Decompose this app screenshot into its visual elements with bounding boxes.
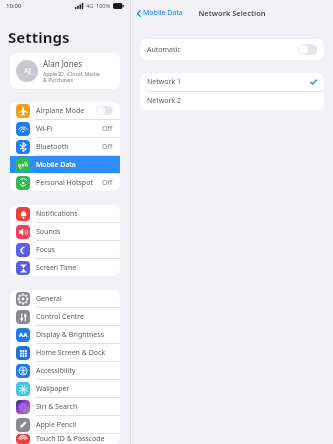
staticText: Touch ID & Passcode [36,434,105,444]
button[interactable]: General [10,290,120,307]
button[interactable]: Mobile Data [10,156,120,173]
staticText: Notifications [36,209,78,219]
staticText: Wallpaper [36,384,70,394]
button[interactable]: AA [10,326,120,343]
staticText: Bluetooth [36,142,69,152]
button[interactable]: Automatic network selection toggle, off [298,44,317,55]
button[interactable]: Airplane Mode toggle, off [96,106,113,115]
button[interactable]: Control Centre [10,308,120,325]
staticText: AA [19,331,28,339]
staticText: Siri & Search [36,402,78,412]
button[interactable]: Network 1 [140,73,324,91]
staticText: Apple Pencil [36,420,77,430]
staticText: Off [102,178,113,188]
staticText: Alan Jones [43,58,82,69]
staticText: Network 2 [147,96,181,106]
button[interactable]: AJ [10,53,120,89]
staticText: Sounds [36,227,61,237]
staticText: Airplane Mode [36,106,85,116]
staticText: Accessibility [36,366,76,376]
staticText: Focus [36,245,55,255]
button[interactable]: Home Screen & Dock [10,344,120,361]
button[interactable]: Wi-Fi [10,120,120,137]
staticText: Network 1 [147,77,181,87]
staticText: 100% [96,2,111,9]
staticText: Wi-Fi [36,124,53,134]
staticText: Off [102,142,113,152]
staticText: Control Centre [36,312,85,322]
staticText: Network Selection [198,8,266,18]
staticText: Home Screen & Dock [36,348,106,358]
button[interactable]: Network 2 [140,92,324,110]
button[interactable]: Airplane Mode [10,102,120,119]
button[interactable]: Wallpaper [10,380,120,397]
staticText: Off [102,124,113,134]
button[interactable]: Screen Time [10,259,120,276]
button[interactable]: Touch ID & Passcode [10,434,120,444]
staticText: AJ [24,66,31,76]
button[interactable]: Personal Hotspot [10,174,120,191]
staticText: Screen Time [36,263,77,273]
staticText: 4G [86,2,94,9]
staticText: General [36,294,62,304]
staticText: Apple ID, iCloud, Media & Purchases [43,70,100,84]
button[interactable]: Notifications [10,205,120,222]
staticText: Mobile Data [36,160,76,170]
staticText: 10:00 [6,2,22,10]
staticText: Automatic [147,45,181,55]
button[interactable]: Automatic [140,39,324,60]
button[interactable]: Bluetooth [10,138,120,155]
staticText: Display & Brightness [36,330,105,340]
button[interactable]: Mobile Data [135,6,185,20]
staticText: Personal Hotspot [36,178,93,188]
button[interactable]: Siri & Search [10,398,120,415]
staticText: Mobile Data [143,8,183,18]
button[interactable]: Accessibility [10,362,120,379]
button[interactable]: Apple Pencil [10,416,120,433]
button[interactable]: Focus [10,241,120,258]
staticText: Settings [8,27,70,47]
button[interactable]: Sounds [10,223,120,240]
